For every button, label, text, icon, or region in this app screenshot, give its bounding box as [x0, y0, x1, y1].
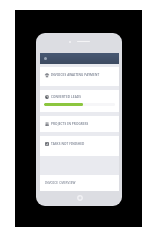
staticText: CONVERTED LEADS	[51, 95, 82, 99]
other: Menu	[44, 57, 47, 60]
staticText: INVOICES AWAITING PAYMENT	[51, 73, 100, 77]
button[interactable]: TASKS NOT FINISHED	[40, 136, 119, 156]
button[interactable]: PROJECTS IN PROGRESS	[40, 116, 119, 132]
staticText: TASKS NOT FINISHED	[51, 142, 85, 146]
button[interactable]: CONVERTED LEADS	[40, 90, 119, 112]
button[interactable]: INVOICES AWAITING PAYMENT	[40, 67, 119, 86]
button[interactable]: Home	[77, 195, 83, 201]
staticText: INVOICE OVERVIEW	[45, 181, 76, 185]
staticText: PROJECTS IN PROGRESS	[51, 122, 89, 126]
button[interactable]: Menu	[40, 53, 119, 64]
button[interactable]: INVOICE OVERVIEW	[40, 175, 119, 191]
